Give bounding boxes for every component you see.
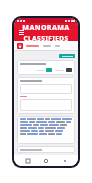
button[interactable]: Recents [23, 156, 33, 166]
button[interactable] [43, 45, 51, 47]
button[interactable] [66, 68, 72, 72]
button[interactable] [46, 68, 52, 72]
button[interactable] [59, 54, 75, 58]
button[interactable]: Back [60, 156, 70, 166]
staticText: CLASSIFIEDS [23, 34, 69, 41]
button[interactable] [55, 45, 60, 47]
button[interactable] [20, 84, 72, 94]
button[interactable]: Menu [17, 28, 25, 36]
button[interactable] [17, 146, 75, 153]
staticText: MANORAMA [22, 23, 70, 33]
button[interactable]: Home [17, 43, 23, 49]
button[interactable]: Home [41, 156, 51, 166]
button[interactable] [26, 45, 39, 47]
button[interactable] [20, 99, 72, 111]
